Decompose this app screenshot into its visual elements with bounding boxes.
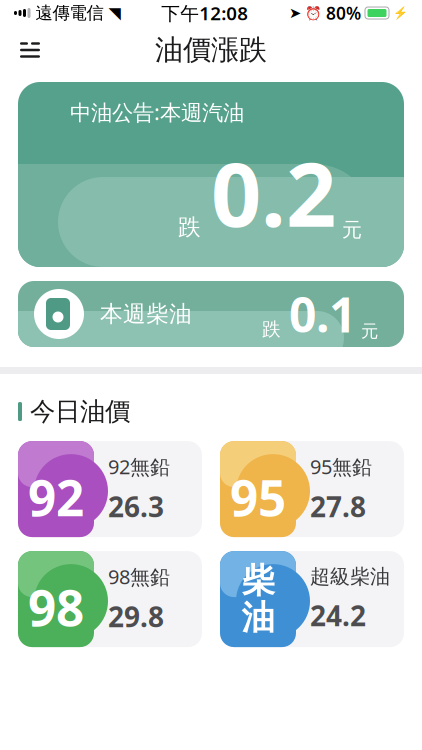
staticText: 元 bbox=[361, 321, 378, 342]
button[interactable]: 92 bbox=[18, 441, 202, 537]
staticText: 今日油價 bbox=[30, 396, 130, 427]
staticText: 元 bbox=[342, 217, 362, 242]
staticText: 27.8 bbox=[310, 488, 366, 525]
staticText: 80% bbox=[326, 1, 361, 24]
staticText: 0.2 bbox=[211, 134, 336, 251]
staticText: 92 bbox=[28, 464, 84, 530]
staticText: 柴 bbox=[241, 560, 274, 601]
staticText: 0.1 bbox=[289, 282, 356, 346]
button[interactable]: 柴 bbox=[220, 551, 404, 647]
staticText: ⚡ bbox=[393, 6, 408, 20]
staticText: 95 bbox=[230, 464, 286, 530]
staticText: 本週柴油 bbox=[100, 300, 192, 328]
staticText: 中油公告:本週汽油 bbox=[70, 98, 244, 126]
staticText: 98 bbox=[28, 574, 84, 640]
staticText: ◥ bbox=[108, 4, 120, 22]
staticText: 92無鉛 bbox=[108, 453, 170, 480]
staticText: 下午12:08 bbox=[161, 1, 248, 25]
staticText: ➤ bbox=[289, 5, 301, 21]
staticText: 遠傳電信 bbox=[35, 2, 103, 24]
staticText: 跌 bbox=[262, 318, 281, 341]
staticText: 油 bbox=[241, 597, 274, 638]
staticText: 29.8 bbox=[108, 598, 164, 635]
staticText: 超級柴油 bbox=[310, 564, 390, 589]
staticText: 95無鉛 bbox=[310, 453, 372, 480]
button[interactable]: 98 bbox=[18, 551, 202, 647]
button[interactable]: Menu bbox=[8, 28, 52, 72]
staticText: 98無鉛 bbox=[108, 563, 170, 590]
staticText: 24.2 bbox=[310, 597, 366, 634]
staticText: 26.3 bbox=[108, 488, 164, 525]
staticText: 油價漲跌 bbox=[155, 33, 267, 67]
staticText: ⏰ bbox=[305, 5, 322, 21]
button[interactable]: 95 bbox=[220, 441, 404, 537]
staticText: 跌 bbox=[178, 213, 201, 241]
